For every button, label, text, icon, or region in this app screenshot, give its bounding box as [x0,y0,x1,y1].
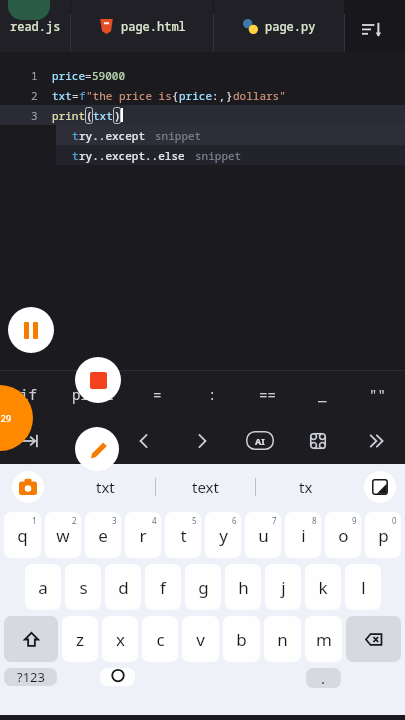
button[interactable]: text [156,464,255,509]
button[interactable]: Recording timer [0,385,33,451]
button[interactable]: t [56,145,405,165]
staticText: m [316,628,332,651]
staticText: y [219,524,228,547]
button[interactable]: Clipboard [0,464,56,509]
staticText: { [172,88,179,103]
button[interactable]: print [56,371,129,417]
button[interactable]: AI assistant [231,417,289,464]
staticText: 0 [392,515,397,526]
staticText: = [72,88,79,103]
button[interactable]: e [85,512,121,558]
staticText: v [196,628,205,651]
button[interactable]: t [165,512,201,558]
button[interactable]: tx [256,464,355,509]
staticText: j [281,576,286,599]
button[interactable]: Expand suggestions [355,464,405,509]
staticText: 3 [31,108,38,123]
button[interactable]: ?123 [4,668,57,686]
staticText: t [72,148,79,163]
staticText: 1 [31,68,38,83]
button[interactable]: Shift [4,616,58,662]
staticText: 9 [352,515,357,526]
button[interactable]: o [325,512,361,558]
button[interactable]: Collapse [57,417,115,464]
button[interactable]: = [129,371,185,417]
button[interactable]: Next [173,417,231,464]
button[interactable]: y [205,512,241,558]
staticText: = [85,68,92,83]
button[interactable]: page.html [71,0,213,52]
staticText: print [72,385,114,404]
staticText: } [226,88,233,103]
staticText: f [160,576,166,599]
button[interactable]: . [306,668,341,688]
button[interactable]: q [4,512,41,558]
button[interactable]: h [225,564,261,610]
button[interactable]: c [142,616,178,662]
button[interactable]: x [102,616,138,662]
staticText: t [72,128,79,143]
button[interactable]: b [223,616,260,662]
button[interactable]: i [285,512,321,558]
button[interactable]: s [65,564,101,610]
staticText: "the price is [86,88,172,103]
staticText: 3 [112,515,117,526]
staticText: e [98,524,108,547]
button[interactable]: read.js [0,0,70,52]
staticText: p [378,524,389,547]
button[interactable]: page.py [214,0,344,52]
staticText: x [116,628,125,651]
button[interactable]: == [240,371,295,417]
staticText: 6 [232,515,237,526]
button[interactable]: p [365,512,401,558]
staticText: "" [369,385,386,404]
button[interactable]: a [25,564,61,610]
staticText: z [76,628,84,651]
button[interactable]: Brush tool [75,427,119,471]
button[interactable]: t [56,125,405,145]
button[interactable]: g [185,564,221,610]
button[interactable]: txt [56,464,155,509]
button[interactable]: u [245,512,281,558]
button[interactable]: _ [295,371,350,417]
staticText: l [361,576,366,599]
button[interactable]: Stop recording [75,357,121,403]
staticText: g [198,576,209,599]
button[interactable]: f [145,564,181,610]
button[interactable]: z [62,616,98,662]
staticText: . [321,668,326,688]
staticText: txt [52,88,72,103]
staticText: print [52,108,85,123]
button[interactable]: r [125,512,161,558]
staticText: t [180,524,187,547]
button[interactable]: n [264,616,301,662]
button[interactable]: if [0,371,56,417]
button[interactable]: Command [289,417,347,464]
staticText: s [79,576,88,599]
staticText: if [20,385,37,404]
button[interactable]: d [105,564,141,610]
button[interactable]: k [305,564,341,610]
staticText: snippet [155,128,202,143]
button[interactable]: More [347,417,405,464]
staticText: k [318,576,328,599]
button[interactable]: m [305,616,342,662]
button[interactable]: v [182,616,219,662]
button[interactable]: Sort [345,0,398,52]
staticText: c [156,628,165,651]
button[interactable]: j [265,564,301,610]
staticText: _ [318,385,327,404]
button[interactable]: Backspace [346,616,401,662]
staticText: w [56,524,70,547]
button[interactable]: Previous [115,417,173,464]
button[interactable]: l [345,564,381,610]
staticText: = [153,385,162,404]
button[interactable]: "" [350,371,405,417]
button[interactable]: : [185,371,240,417]
button[interactable]: Tab [0,417,57,464]
staticText: b [236,628,247,651]
staticText: read.js [10,18,61,34]
button[interactable]: w [45,512,81,558]
button[interactable]: Pause recording [8,307,54,353]
button[interactable]: Voice input [100,668,135,686]
